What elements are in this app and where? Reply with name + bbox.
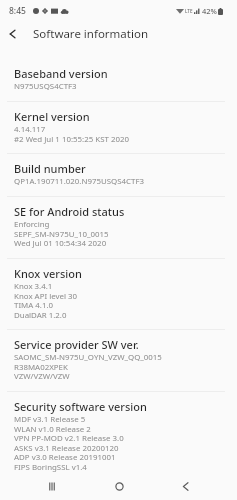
staticText: R38MA02XPEK	[14, 362, 68, 373]
button[interactable]: Home	[105, 473, 133, 500]
button[interactable]: Knox version	[0, 259, 237, 329]
staticText: Build number	[14, 161, 86, 176]
button[interactable]: SE for Android status	[0, 197, 237, 258]
staticText: VZW/VZW/VZW	[14, 371, 70, 382]
staticText: Knox version	[14, 266, 82, 281]
staticText: FIPS BoringSSL v1.4	[14, 462, 87, 473]
staticText: Kernel version	[14, 109, 90, 124]
staticText: ASKS v3.1 Release 20200120	[14, 443, 119, 454]
staticText: SE for Android status	[14, 204, 125, 219]
staticText: 42%	[202, 6, 217, 16]
staticText: WLAN v1.0 Release 2	[14, 424, 91, 435]
button[interactable]: Build number	[0, 154, 237, 196]
staticText: Knox 3.4.1	[14, 281, 53, 292]
button[interactable]: Back	[171, 473, 199, 500]
staticText: N975USQS4CTF3	[14, 81, 77, 91]
button[interactable]: Navigate up	[0, 21, 25, 46]
button[interactable]: Service provider SW ver.	[0, 330, 237, 391]
staticText: #2 Wed Jul 1 10:55:25 KST 2020	[14, 134, 129, 145]
staticText: TIMA 4.1.0	[14, 300, 54, 311]
staticText: 4.14.117	[14, 124, 46, 135]
staticText: Security software version	[14, 399, 147, 414]
staticText: Software information	[33, 26, 148, 42]
staticText: Wed Jul 01 10:54:34 2020	[14, 238, 107, 249]
staticText: LTE	[185, 8, 193, 14]
staticText: QP1A.190711.020.N975USQS4CTF3	[14, 176, 145, 186]
staticText: MDF v3.1 Release 5	[14, 414, 86, 425]
button[interactable]: Kernel version	[0, 102, 237, 153]
staticText: VPN PP-MOD v2.1 Release 3.0	[14, 433, 124, 444]
staticText: ADP v3.0 Release 20191001	[14, 452, 116, 463]
staticText: Knox API level 30	[14, 291, 78, 302]
staticText: SEPF_SM-N975U_10_0015	[14, 229, 109, 240]
button[interactable]: Baseband version	[0, 59, 237, 101]
staticText: Service provider SW ver.	[14, 337, 139, 352]
staticText: Enforcing	[14, 219, 50, 230]
staticText: SAOMC_SM-N975U_OYN_VZW_QQ_0015	[14, 352, 162, 363]
button[interactable]: Recent apps	[38, 473, 66, 500]
button[interactable]: Security software version	[0, 392, 237, 482]
staticText: DualDAR 1.2.0	[14, 310, 67, 321]
staticText: Baseband version	[14, 66, 108, 81]
staticText: 8:45	[9, 5, 26, 17]
